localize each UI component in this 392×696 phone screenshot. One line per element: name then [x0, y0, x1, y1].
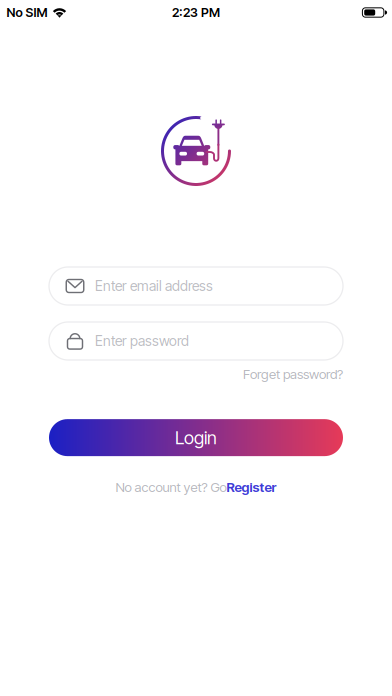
staticText: 2:23 PM [172, 5, 220, 20]
button[interactable]: Forget password? [243, 363, 343, 385]
staticText: No account yet? Go [115, 479, 226, 495]
staticText: Register [226, 479, 276, 495]
staticText: Enter password [95, 332, 189, 349]
staticText: Forget password? [243, 366, 343, 382]
staticText: No SIM [6, 5, 47, 20]
button[interactable]: No account yet? Go [115, 475, 276, 499]
button[interactable]: Enter email address [49, 267, 343, 305]
button[interactable]: Enter password [49, 322, 343, 360]
staticText: Enter email address [95, 277, 213, 294]
staticText: Login [175, 427, 217, 448]
button[interactable]: Login [49, 419, 343, 456]
